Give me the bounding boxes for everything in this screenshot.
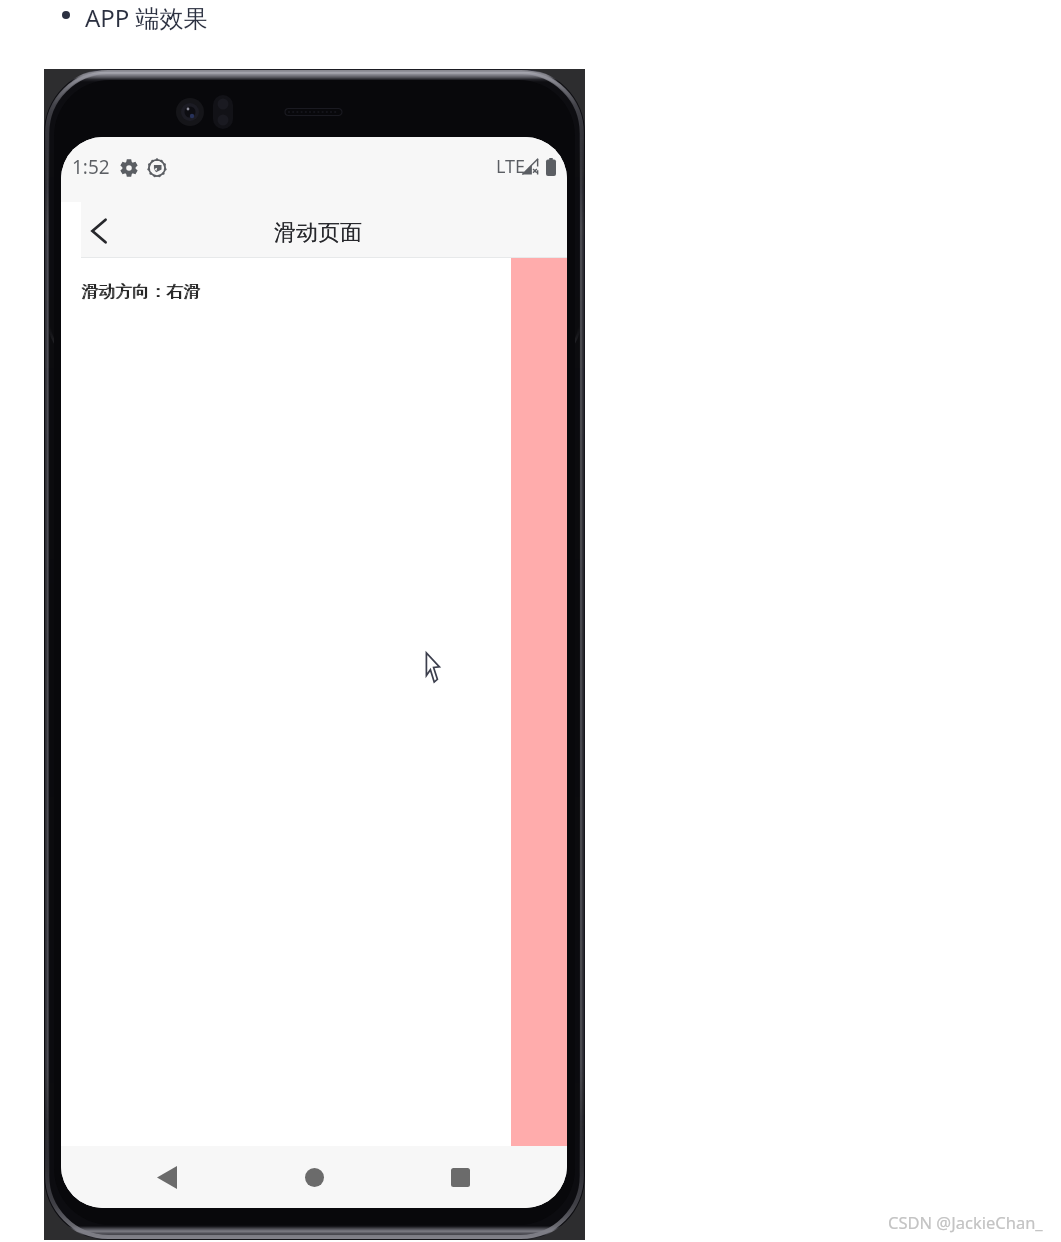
button[interactable]: Home [290,1153,338,1201]
staticText: 滑动方向：右滑 [82,281,201,302]
button[interactable]: Back [75,206,123,254]
staticText: 滑动方向：右滑 [81,281,200,302]
staticText: APP 端效果 [85,1,208,34]
button[interactable]: Back [143,1153,191,1201]
staticText: 滑动页面 [274,219,362,247]
staticText: CSDN @JackieChan_ [888,1211,1043,1233]
staticText: LTE [496,154,526,179]
staticText: 1:52 [72,154,110,180]
button[interactable]: Recent apps [436,1153,484,1201]
staticText: 滑动页面 [274,219,362,247]
